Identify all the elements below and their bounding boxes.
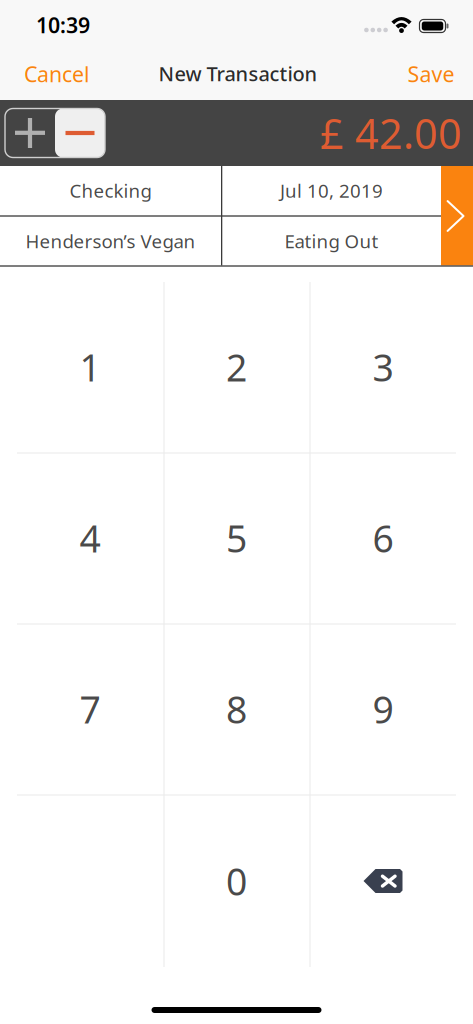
staticText: New Transaction (158, 60, 317, 87)
button[interactable]: 6 (309, 452, 473, 623)
staticText: 6 (372, 513, 393, 563)
staticText: Jul 10, 2019 (280, 178, 383, 203)
staticText: 4 (79, 513, 100, 563)
button[interactable]: 4 (0, 452, 163, 623)
button[interactable]: 2 (163, 282, 309, 452)
button[interactable]: Cancel (14, 52, 100, 96)
button[interactable]: 0 (163, 794, 309, 967)
button[interactable]: Jul 10, 2019 (222, 166, 441, 215)
button[interactable]: 5 (163, 452, 309, 623)
button[interactable]: 1 (0, 282, 163, 452)
staticText: Henderson’s Vegan (25, 229, 195, 253)
button[interactable]: Expense or income (5, 108, 105, 157)
staticText: 8 (226, 684, 247, 734)
staticText: 2 (226, 342, 247, 392)
button[interactable]: 8 (163, 623, 309, 794)
button[interactable]: Delete (309, 794, 473, 967)
button[interactable]: Eating Out (222, 216, 441, 265)
staticText: Checking (69, 178, 151, 203)
button[interactable]: Checking (0, 166, 221, 215)
staticText: 0 (226, 856, 247, 906)
button[interactable]: 9 (309, 623, 473, 794)
staticText: £ 42.00 (320, 106, 462, 160)
staticText: 3 (372, 342, 393, 392)
staticText: 5 (226, 513, 247, 563)
button[interactable]: Save (393, 52, 469, 96)
staticText: Eating Out (284, 229, 378, 253)
button[interactable]: Next field (441, 166, 473, 265)
staticText: Cancel (24, 60, 90, 88)
staticText: 7 (79, 684, 100, 734)
staticText: 9 (372, 684, 393, 734)
staticText: 10:39 (36, 11, 90, 39)
button[interactable]: Henderson’s Vegan (0, 216, 221, 265)
staticText: Save (407, 60, 454, 88)
staticText: 1 (79, 342, 100, 392)
button[interactable]: 3 (309, 282, 473, 452)
button[interactable]: 7 (0, 623, 163, 794)
